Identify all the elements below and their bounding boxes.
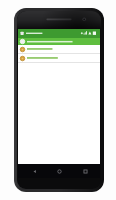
button[interactable]: List item 2 <box>18 54 100 62</box>
button[interactable]: Recent apps <box>75 164 95 178</box>
button[interactable]: List item 1 <box>18 45 100 53</box>
button[interactable]: Selected item <box>18 38 100 45</box>
button[interactable]: Home <box>49 164 69 178</box>
button[interactable]: Back <box>24 164 44 178</box>
